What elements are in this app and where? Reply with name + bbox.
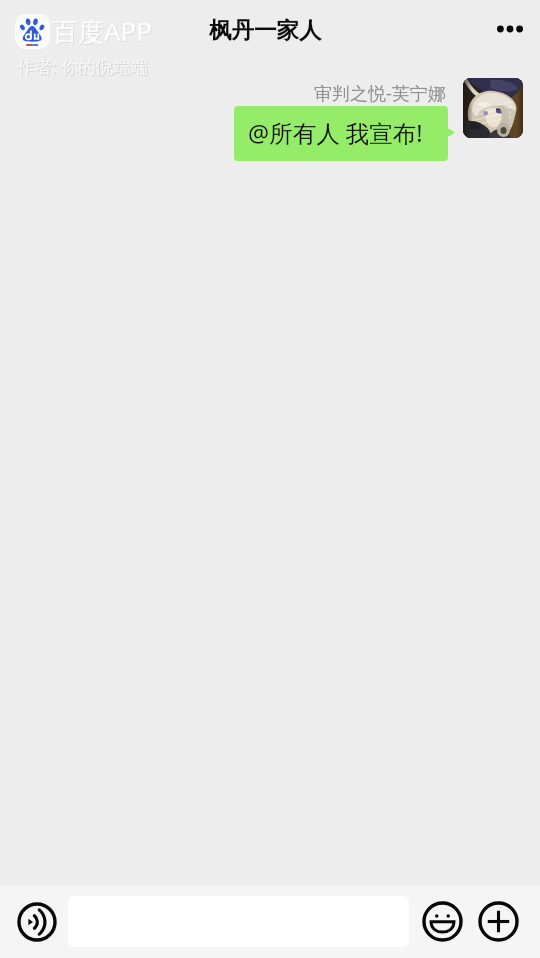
- button[interactable]: Emoji: [422, 901, 463, 942]
- staticText: 作者: 你的倪端端: [18, 55, 149, 79]
- staticText: 百度APP: [52, 13, 153, 49]
- staticText: 审判之悦-芙宁娜: [314, 81, 446, 106]
- staticText: 枫丹一家人: [209, 16, 322, 44]
- button[interactable]: More options: [488, 7, 532, 51]
- staticText: 百度APP: [53, 14, 154, 50]
- staticText: 作者: 你的倪端端: [17, 54, 148, 78]
- button[interactable]: @所有人 我宣布!: [234, 106, 448, 161]
- button[interactable]: Avatar: [463, 78, 523, 138]
- button[interactable]: Voice message: [17, 902, 57, 942]
- button[interactable]: More functions: [478, 901, 519, 942]
- staticText: @所有人 我宣布!: [248, 117, 423, 149]
